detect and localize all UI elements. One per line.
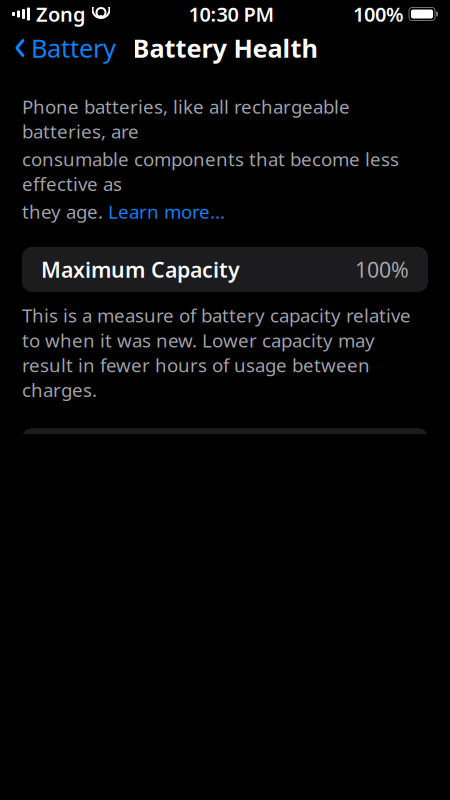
staticText: Battery xyxy=(31,31,116,65)
staticText: Phone batteries, like all rechargeable b… xyxy=(22,94,350,144)
staticText: This is a measure of battery capacity re… xyxy=(22,303,411,402)
staticText: they age. xyxy=(22,199,108,224)
button[interactable]: Battery xyxy=(0,28,130,68)
staticText: Zong xyxy=(36,1,86,27)
staticText: consumable components that become less e… xyxy=(22,147,399,196)
staticText: Learn more... xyxy=(108,199,225,224)
staticText: 100% xyxy=(353,1,404,27)
staticText: 100% xyxy=(355,255,409,284)
staticText: Battery Health xyxy=(132,31,317,65)
staticText: 10:30 PM xyxy=(188,1,274,27)
button[interactable]: Learn more... xyxy=(108,199,225,224)
button[interactable]: Maximum Capacity xyxy=(22,247,428,292)
button[interactable]: Peak Performance Capability xyxy=(22,428,428,473)
staticText: Maximum Capacity xyxy=(41,255,240,284)
